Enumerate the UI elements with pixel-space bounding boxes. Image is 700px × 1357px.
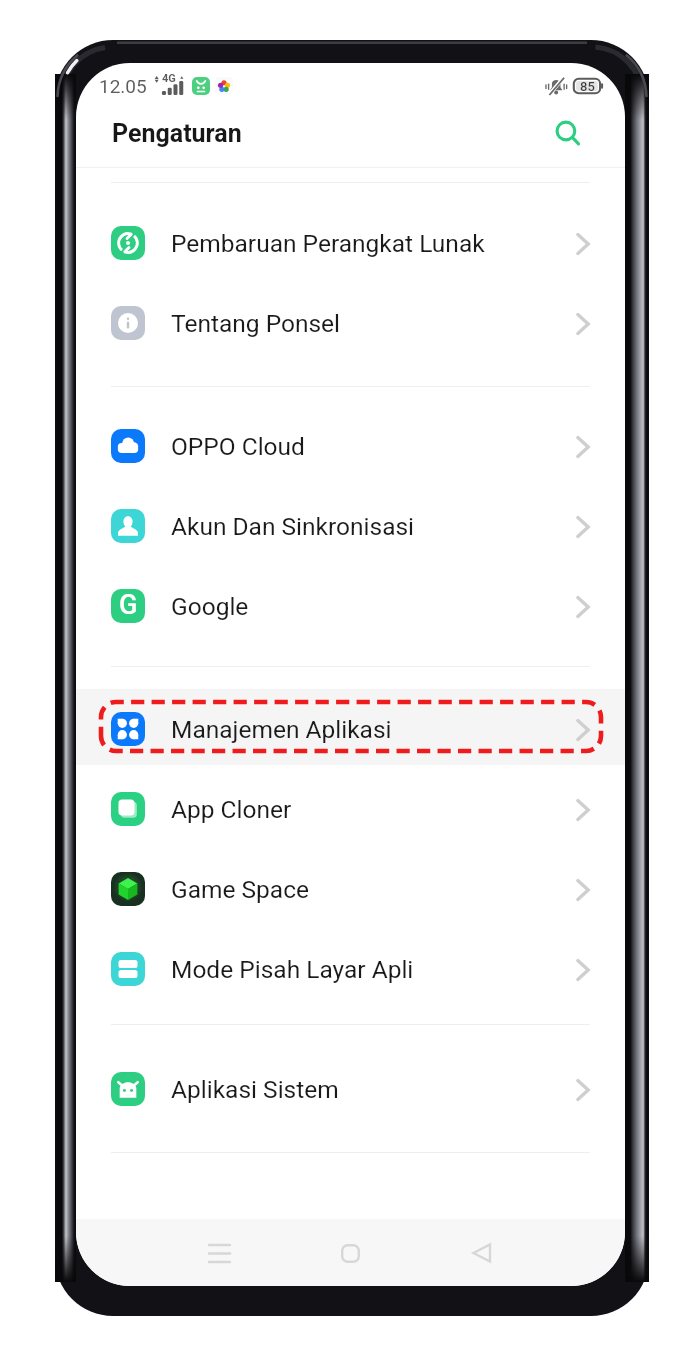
staticText: Manajemen Aplikasi (171, 715, 392, 744)
button[interactable]: Recent apps (189, 1223, 249, 1283)
staticText: Akun Dan Sinkronisasi (171, 512, 415, 541)
button[interactable]: Search (546, 112, 590, 156)
button[interactable]: Manajemen Aplikasi (76, 689, 625, 769)
button[interactable]: G (76, 566, 625, 646)
button[interactable]: Game Space (76, 849, 625, 929)
staticText: Tentang Ponsel (171, 309, 341, 338)
staticText: G (119, 589, 138, 621)
staticText: 85 (580, 79, 595, 94)
staticText: Pembaruan Perangkat Lunak (171, 229, 485, 258)
button[interactable]: OPPO Cloud (76, 406, 625, 486)
staticText: Aplikasi Sistem (171, 1075, 339, 1104)
button[interactable]: Akun Dan Sinkronisasi (76, 486, 625, 566)
button[interactable]: Home (320, 1223, 380, 1283)
button[interactable]: App Cloner (76, 769, 625, 849)
button[interactable]: Pembaruan Perangkat Lunak (76, 203, 625, 283)
button[interactable]: Mode Pisah Layar Apli (76, 929, 625, 1009)
staticText: 4G (162, 72, 176, 85)
staticText: 12.05 (99, 75, 147, 97)
staticText: App Cloner (171, 795, 292, 824)
staticText: Pengaturan (112, 119, 242, 148)
button[interactable]: Tentang Ponsel (76, 283, 625, 363)
button[interactable]: Aplikasi Sistem (76, 1049, 625, 1129)
staticText: OPPO Cloud (171, 432, 305, 461)
staticText: Mode Pisah Layar Apli (171, 955, 414, 984)
staticText: Google (171, 592, 249, 621)
staticText: Game Space (171, 875, 310, 904)
button[interactable]: Back (451, 1223, 511, 1283)
